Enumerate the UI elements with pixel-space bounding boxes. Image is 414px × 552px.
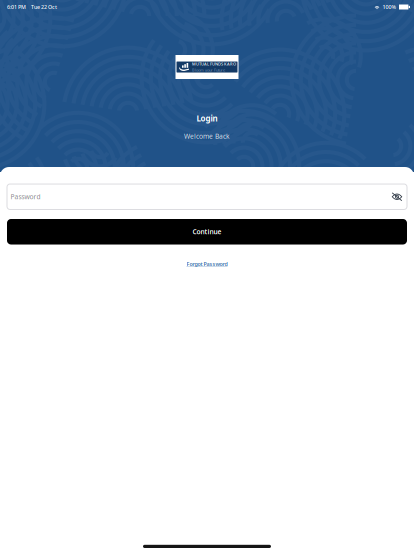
staticText: Forgot Password	[186, 260, 227, 268]
staticText: Welcome Back	[184, 132, 230, 140]
button[interactable]: Show password	[386, 186, 408, 208]
staticText: Continue	[192, 227, 221, 236]
staticText: Login	[196, 113, 217, 124]
staticText: 6:01 PM	[7, 3, 26, 11]
staticText: Password	[10, 192, 40, 201]
button[interactable]: Continue	[7, 219, 407, 244]
staticText: 100%	[382, 3, 396, 11]
button[interactable]: Forgot Password	[186, 260, 227, 268]
button[interactable]: Password	[7, 184, 407, 209]
staticText: Tue 22 Oct	[31, 3, 57, 11]
staticText: Bloom your Future	[192, 67, 225, 73]
staticText: MUTUAL FUNDS KARO	[192, 61, 236, 67]
